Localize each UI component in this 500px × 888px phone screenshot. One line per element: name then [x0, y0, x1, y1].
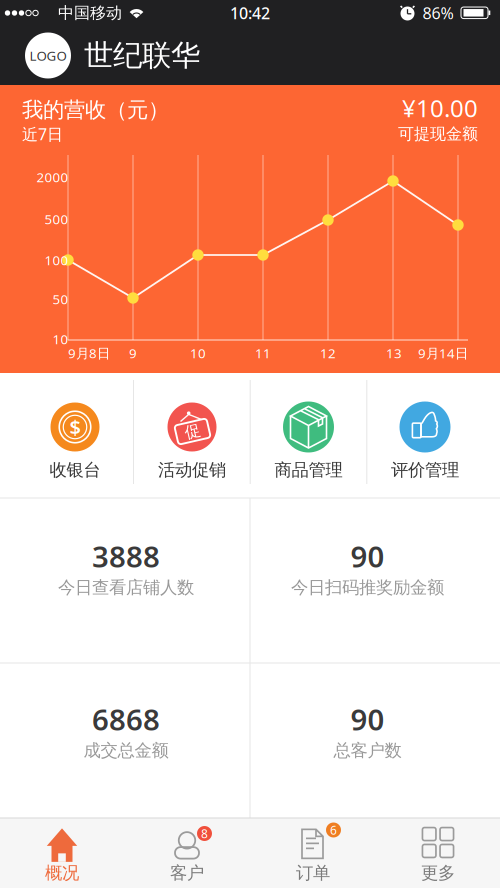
- staticText: ¥10.00: [402, 92, 478, 124]
- staticText: 今日查看店铺人数: [58, 577, 194, 598]
- staticText: 评价管理: [391, 459, 459, 481]
- staticText: 10: [190, 344, 206, 362]
- staticText: 6: [330, 822, 337, 838]
- button[interactable]: 促: [135, 374, 249, 497]
- button[interactable]: 概况: [7, 821, 117, 885]
- staticText: 10:42: [230, 2, 270, 24]
- staticText: 我的营收（元）: [22, 97, 169, 123]
- staticText: 可提现金额: [398, 124, 478, 144]
- staticText: 9月14日: [418, 344, 468, 362]
- staticText: 促: [184, 422, 200, 441]
- staticText: 中国移动: [58, 3, 122, 23]
- staticText: 50: [52, 290, 68, 308]
- button[interactable]: 商品管理: [251, 374, 365, 497]
- staticText: 收银台: [49, 459, 100, 481]
- button[interactable]: $: [18, 374, 132, 497]
- staticText: 13: [386, 344, 402, 362]
- staticText: 9: [129, 344, 137, 362]
- staticText: 9月8日: [68, 344, 110, 362]
- staticText: 客户: [170, 862, 204, 884]
- staticText: $: [69, 414, 80, 440]
- button[interactable]: 更多: [383, 821, 493, 885]
- staticText: 订单: [296, 862, 330, 884]
- button[interactable]: 订单: [258, 821, 368, 885]
- staticText: 8: [201, 825, 208, 841]
- staticText: 成交总金额: [83, 740, 168, 761]
- staticText: 100: [44, 251, 68, 269]
- staticText: 3888: [92, 536, 160, 575]
- staticText: 86%: [422, 2, 453, 24]
- staticText: 概况: [45, 862, 79, 884]
- staticText: 近7日: [22, 123, 63, 145]
- staticText: 今日扫码推奖励金额: [291, 577, 444, 598]
- staticText: 12: [320, 344, 336, 362]
- staticText: 90: [350, 536, 384, 575]
- staticText: 90: [350, 699, 384, 738]
- button[interactable]: LOGO: [25, 25, 500, 85]
- staticText: 6868: [92, 699, 160, 738]
- button[interactable]: 评价管理: [368, 374, 482, 497]
- staticText: 商品管理: [274, 459, 342, 481]
- staticText: 总客户数: [333, 740, 401, 761]
- staticText: 10: [52, 330, 68, 348]
- staticText: LOGO: [29, 47, 66, 64]
- staticText: 世纪联华: [84, 37, 200, 73]
- staticText: 500: [44, 210, 68, 228]
- staticText: 11: [255, 344, 271, 362]
- staticText: 活动促销: [158, 459, 226, 481]
- staticText: 更多: [421, 862, 455, 884]
- button[interactable]: 客户: [132, 821, 242, 885]
- staticText: 2000: [36, 168, 68, 186]
